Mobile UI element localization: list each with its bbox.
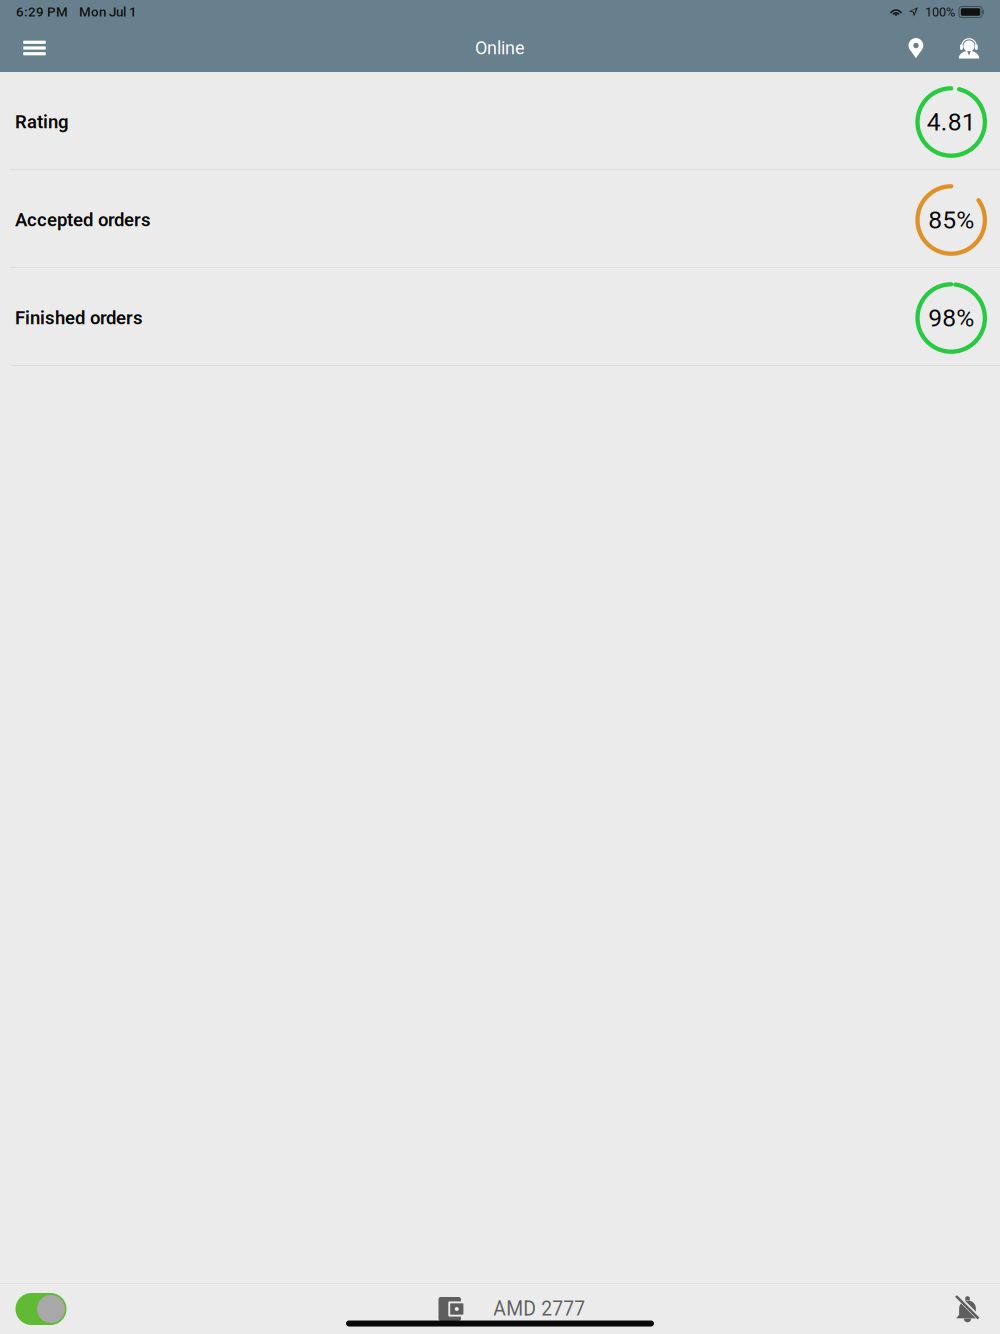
staticText: Rating (15, 111, 69, 133)
staticText: 100% (925, 4, 955, 19)
staticText: AMD 2777 (493, 1298, 585, 1320)
staticText: 98% (928, 303, 974, 332)
button[interactable]: Support (948, 24, 990, 72)
staticText: 4.81 (927, 107, 976, 136)
staticText: Accepted orders (15, 209, 151, 231)
staticText: Finished orders (15, 307, 143, 329)
button[interactable]: Notifications muted (955, 1294, 980, 1323)
button[interactable]: Menu (11, 24, 58, 72)
button[interactable]: Rating (0, 72, 1000, 170)
button[interactable]: AMD 2777 (436, 1297, 585, 1321)
staticText: 6:29 PM (16, 4, 68, 20)
staticText: Online (475, 37, 525, 59)
staticText: 85% (928, 205, 974, 234)
staticText: Mon Jul 1 (79, 4, 137, 20)
button[interactable]: Finished orders (0, 268, 1000, 366)
button[interactable]: Map (895, 24, 937, 72)
button[interactable]: Go offline (15, 1293, 66, 1325)
button[interactable]: Accepted orders (0, 170, 1000, 268)
